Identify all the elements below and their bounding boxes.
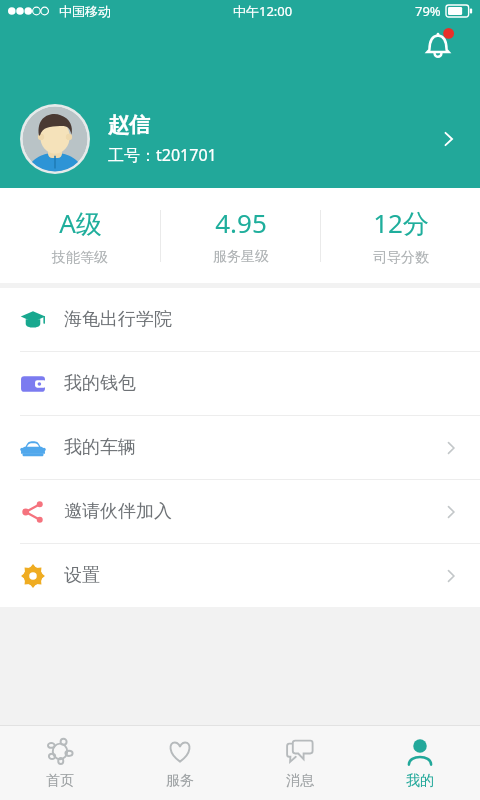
- staticText: 工号：t201701: [108, 144, 217, 166]
- staticText: 消息: [286, 772, 314, 790]
- staticText: 设置: [64, 564, 100, 587]
- button[interactable]: 赵信: [0, 90, 480, 188]
- staticText: 技能等级: [52, 249, 108, 267]
- staticText: A级: [59, 205, 102, 241]
- staticText: 我的车辆: [64, 436, 136, 459]
- button[interactable]: 首页: [0, 726, 120, 800]
- button[interactable]: 我的钱包: [0, 352, 480, 415]
- staticText: 中午12:00: [233, 2, 293, 20]
- button[interactable]: 设置: [0, 544, 480, 607]
- staticText: 我的钱包: [64, 372, 136, 395]
- staticText: 12分: [373, 205, 429, 241]
- button[interactable]: 12分: [321, 205, 480, 267]
- button[interactable]: Notifications: [418, 22, 462, 66]
- staticText: 海龟出行学院: [64, 308, 172, 331]
- staticText: 赵信: [108, 112, 150, 138]
- staticText: 我的: [406, 772, 434, 790]
- staticText: 司导分数: [373, 249, 429, 267]
- button[interactable]: 消息: [240, 726, 360, 800]
- button[interactable]: A级: [0, 205, 160, 267]
- button[interactable]: 4.95: [161, 205, 320, 266]
- staticText: 中国移动: [59, 3, 111, 19]
- button[interactable]: 邀请伙伴加入: [0, 480, 480, 543]
- staticText: 服务星级: [213, 248, 269, 266]
- button[interactable]: 海龟出行学院: [0, 288, 480, 351]
- button[interactable]: 我的车辆: [0, 416, 480, 479]
- staticText: 服务: [166, 772, 194, 790]
- staticText: 4.95: [215, 205, 267, 240]
- staticText: 邀请伙伴加入: [64, 500, 172, 523]
- button[interactable]: 我的: [360, 726, 480, 800]
- button[interactable]: 服务: [120, 726, 240, 800]
- staticText: 首页: [46, 772, 74, 790]
- staticText: 79%: [415, 2, 441, 20]
